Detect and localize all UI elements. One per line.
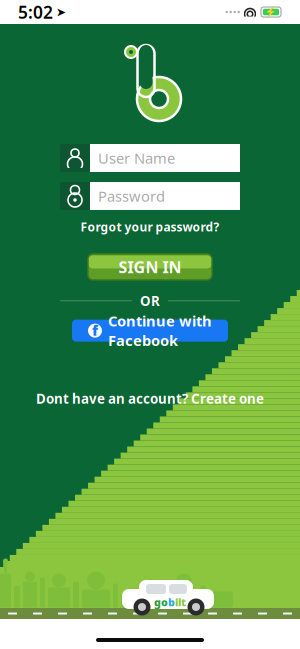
button[interactable]: Dont have an account? Create one — [30, 386, 270, 411]
button[interactable]: SIGN IN — [88, 254, 212, 280]
staticText: SIGN IN — [118, 256, 181, 277]
staticText: ➤ — [56, 5, 66, 19]
button[interactable]: f — [72, 320, 228, 342]
staticText: Continue with Facebook — [108, 311, 212, 350]
staticText: Dont have an account? Create one — [36, 390, 264, 407]
staticText: User Name — [98, 148, 175, 168]
staticText: Forgot your password? — [80, 219, 219, 235]
staticText: OR — [140, 292, 160, 310]
staticText: 5:02 — [18, 0, 53, 23]
staticText: go — [154, 595, 168, 609]
button[interactable]: Forgot your password? — [74, 216, 225, 238]
staticText: ilt — [175, 595, 186, 609]
staticText: b — [168, 595, 175, 609]
staticText: f — [92, 320, 98, 340]
button[interactable]: User Name — [60, 144, 240, 172]
staticText: ⚡ — [265, 7, 277, 17]
button[interactable]: Password — [60, 182, 240, 210]
staticText: Password — [98, 186, 165, 206]
